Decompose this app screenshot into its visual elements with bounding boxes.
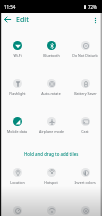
button[interactable]: Nearby <box>34 191 68 216</box>
button[interactable]: More options <box>89 14 101 26</box>
staticText: Bluetooth <box>43 53 60 58</box>
staticText: Auto-rotate <box>41 91 61 96</box>
staticText: Cast <box>81 129 89 134</box>
button[interactable]: Flashlight <box>0 64 34 102</box>
button[interactable]: Screen record <box>68 191 102 216</box>
staticText: Airplane mode <box>39 129 64 134</box>
button[interactable]: Bluetooth <box>34 26 68 64</box>
button[interactable]: Hold and drag to add tiles <box>0 140 102 153</box>
staticText: 11:54 <box>4 4 16 10</box>
button[interactable]: Location <box>0 153 34 191</box>
staticText: Battery Saver <box>74 91 97 96</box>
button[interactable]: Hotspot <box>34 153 68 191</box>
button[interactable]: Battery Saver <box>68 64 102 102</box>
staticText: Do Not Disturb <box>72 53 98 58</box>
button[interactable]: Invert colors <box>68 153 102 191</box>
button[interactable]: Cast <box>68 102 102 140</box>
staticText: 72% <box>88 4 97 10</box>
staticText: Flashlight <box>9 91 26 96</box>
button[interactable]: Wi-Fi <box>0 26 34 64</box>
button[interactable]: Mobile data <box>0 102 34 140</box>
staticText: Hotspot <box>44 180 58 185</box>
button[interactable]: Auto-rotate <box>34 64 68 102</box>
staticText: Mobile data <box>7 129 27 134</box>
button[interactable]: Airplane mode <box>34 102 68 140</box>
button[interactable]: Do Not Disturb <box>68 26 102 64</box>
staticText: Edit <box>16 15 29 25</box>
staticText: Wi-Fi <box>13 53 22 58</box>
staticText: Location <box>10 180 25 185</box>
staticText: Hold and drag to add tiles <box>24 151 79 157</box>
button[interactable]: Back <box>2 14 13 25</box>
button[interactable]: Data Saver <box>0 191 34 216</box>
staticText: Invert colors <box>74 180 96 185</box>
